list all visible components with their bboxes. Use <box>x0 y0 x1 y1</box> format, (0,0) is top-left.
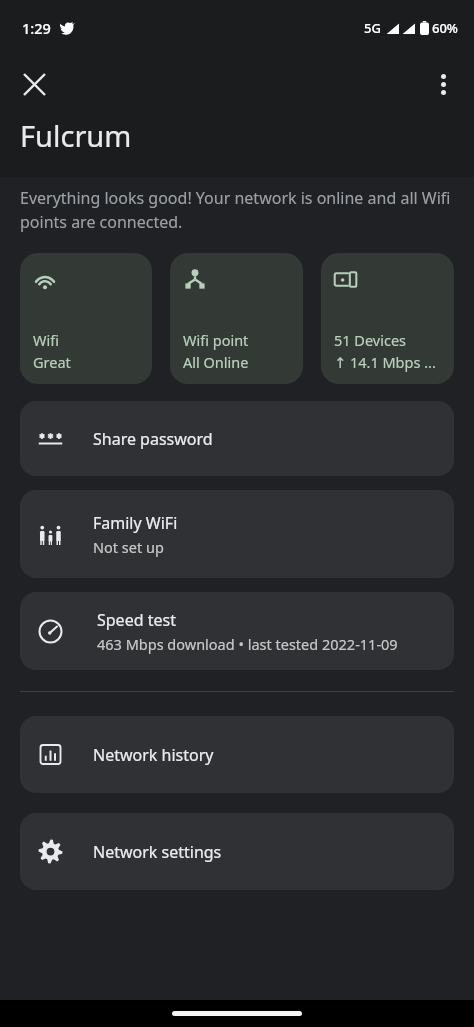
button[interactable]: Network settings <box>20 813 454 890</box>
staticText: Share password <box>93 428 213 450</box>
staticText: 51 Devices <box>334 330 407 350</box>
staticText: Network settings <box>93 841 222 863</box>
button[interactable]: Wifi <box>20 253 152 384</box>
button[interactable]: Close <box>10 60 58 108</box>
button[interactable]: Network history <box>20 716 454 793</box>
staticText: Wifi <box>33 330 59 350</box>
staticText: ↑ 14.1 Mbps ... <box>334 352 436 372</box>
button[interactable]: More options <box>419 60 467 108</box>
button[interactable]: Family WiFi <box>20 490 454 578</box>
staticText: Speed test <box>97 609 176 631</box>
staticText: All Online <box>183 352 249 372</box>
staticText: 1:29 <box>22 18 51 38</box>
staticText: Great <box>33 352 71 372</box>
staticText: Network history <box>93 744 214 766</box>
staticText: 463 Mbps download • last tested 2022-11-… <box>97 634 398 654</box>
staticText: Family WiFi <box>93 512 178 534</box>
button[interactable]: 51 Devices <box>321 253 454 384</box>
button[interactable]: Share password <box>20 401 454 476</box>
staticText: Fulcrum <box>20 116 132 155</box>
button[interactable]: Speed test <box>20 592 454 670</box>
staticText: Not set up <box>93 537 164 557</box>
staticText: 60% <box>432 19 458 37</box>
button[interactable]: Wifi point <box>170 253 303 384</box>
staticText: Everything looks good! Your network is o… <box>20 187 460 233</box>
staticText: Wifi point <box>183 330 249 350</box>
staticText: 5G <box>364 19 381 37</box>
